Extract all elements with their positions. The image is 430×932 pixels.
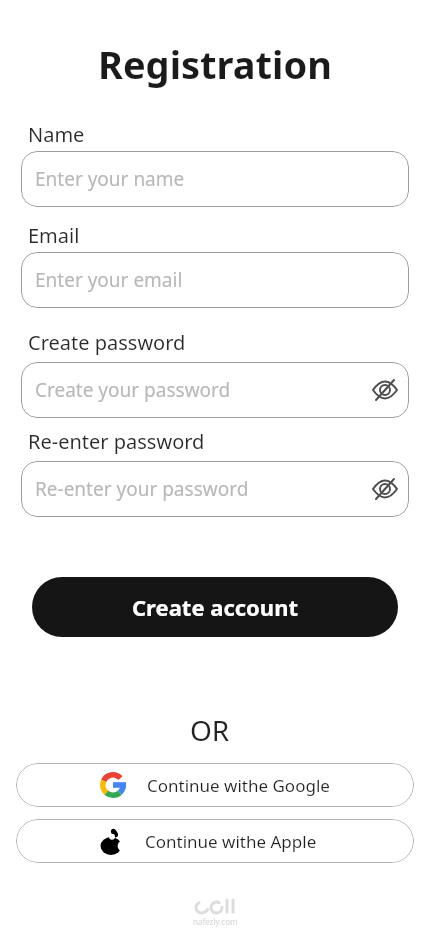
staticText: Re-enter your password <box>35 476 249 502</box>
staticText: nafezly.com <box>193 916 238 927</box>
button[interactable]: Enter your email <box>21 252 409 308</box>
staticText: Enter your email <box>35 267 183 293</box>
button[interactable]: Continue withe Apple <box>16 819 414 863</box>
button[interactable]: Create your password <box>21 362 409 418</box>
button[interactable]: Continue withe Google <box>16 763 414 807</box>
button[interactable]: Create account <box>32 577 398 637</box>
staticText: Create your password <box>35 377 231 403</box>
staticText: Create account <box>132 592 299 622</box>
button[interactable]: Re-enter your password <box>21 461 409 517</box>
staticText: Re-enter password <box>28 428 205 455</box>
staticText: Registration <box>98 38 332 90</box>
staticText: Continue withe Google <box>147 774 330 797</box>
button[interactable]: Enter your name <box>21 151 409 207</box>
staticText: Continue withe Apple <box>145 830 317 853</box>
staticText: Name <box>28 121 85 148</box>
staticText: OR <box>190 711 230 749</box>
staticText: Enter your name <box>35 166 185 192</box>
staticText: Email <box>28 222 80 249</box>
staticText: Create password <box>28 329 186 356</box>
